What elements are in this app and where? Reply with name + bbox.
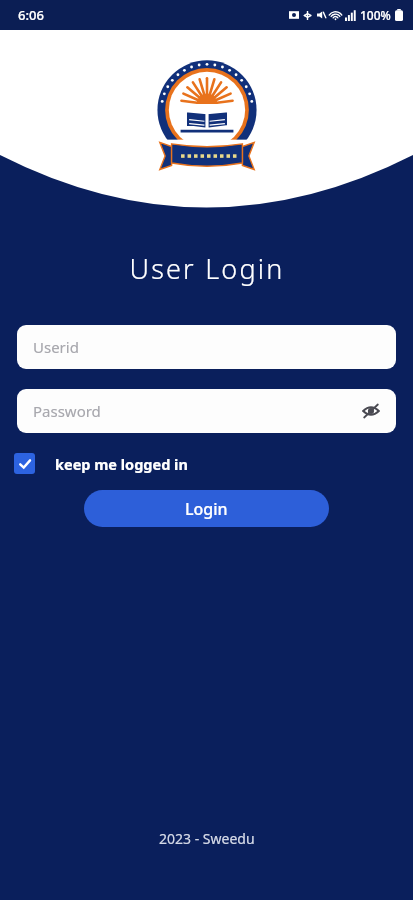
staticText: 6:06 xyxy=(18,6,44,24)
staticText: 2023 - Sweedu xyxy=(159,829,255,848)
button[interactable]: Password xyxy=(17,389,396,433)
staticText: Login xyxy=(185,498,228,520)
staticText: Userid xyxy=(33,337,79,357)
button[interactable]: Login xyxy=(84,490,329,527)
staticText: User Login xyxy=(129,250,285,287)
button[interactable]: keep me logged in xyxy=(14,449,399,478)
button[interactable]: Show password xyxy=(354,394,388,428)
staticText: keep me logged in xyxy=(55,454,188,474)
staticText: 100% xyxy=(360,7,391,23)
button[interactable]: Userid xyxy=(17,325,396,369)
staticText: Password xyxy=(33,401,101,421)
